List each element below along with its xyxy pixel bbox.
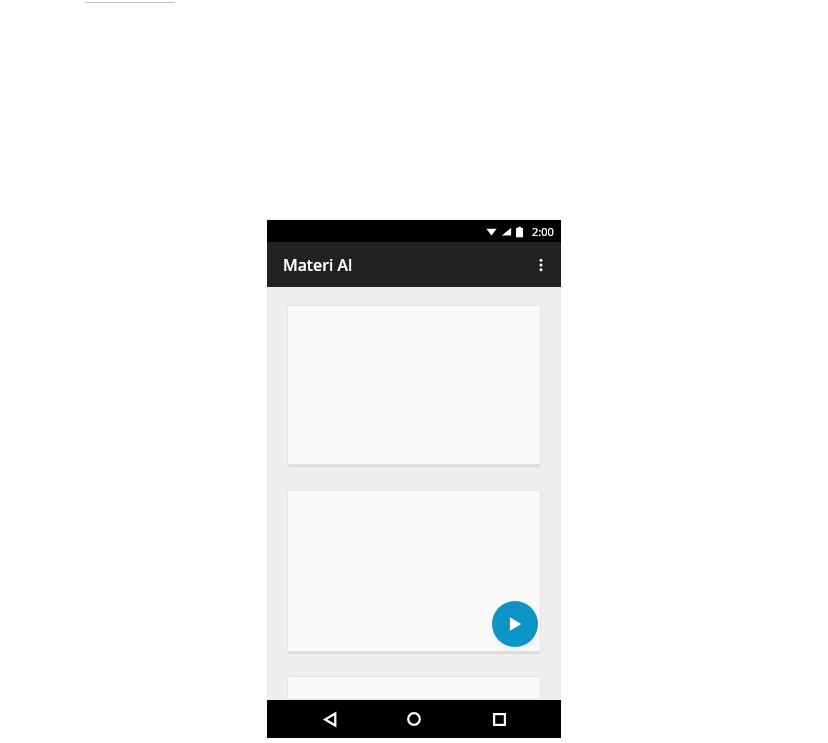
button[interactable]: Back	[308, 700, 352, 738]
button[interactable]: Recent apps	[477, 700, 521, 738]
staticText: 2:00	[532, 224, 554, 239]
staticText: Materi Al	[283, 254, 353, 276]
button[interactable]	[287, 305, 541, 465]
button[interactable]: More options	[521, 245, 561, 285]
button[interactable]: Play	[492, 601, 538, 647]
button[interactable]: Home	[392, 700, 436, 738]
button[interactable]	[287, 490, 541, 652]
button[interactable]	[287, 676, 541, 700]
